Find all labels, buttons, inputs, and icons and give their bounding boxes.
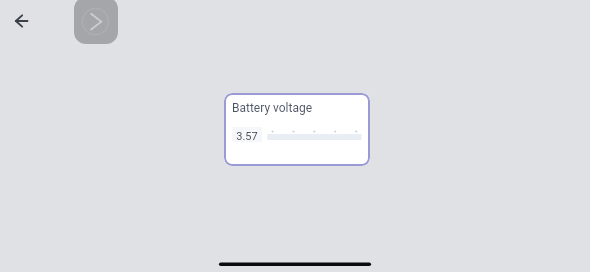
button[interactable]: Back: [7, 7, 35, 35]
button[interactable]: Battery voltage slider: [267, 127, 363, 143]
button[interactable]: Next: [74, 0, 118, 44]
staticText: Battery voltage: [232, 101, 313, 115]
staticText: 3.57: [236, 130, 258, 143]
